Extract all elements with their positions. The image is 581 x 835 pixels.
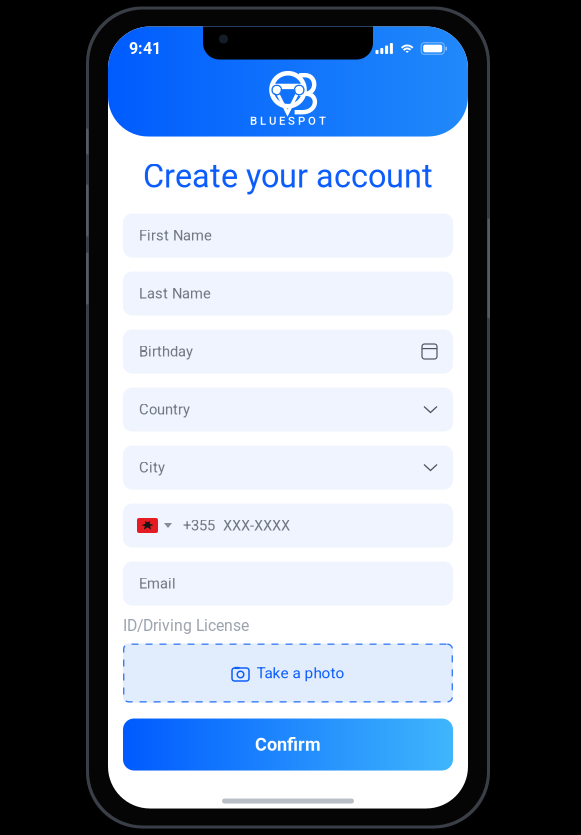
- staticText: ID/Driving License: [123, 616, 249, 635]
- button[interactable]: +355 XXX-XXXX: [123, 503, 453, 547]
- staticText: +355 XXX-XXXX: [183, 517, 290, 534]
- staticText: Email: [139, 575, 176, 592]
- staticText: Country: [139, 401, 190, 418]
- button[interactable]: Email: [123, 561, 453, 605]
- staticText: First Name: [139, 227, 212, 244]
- staticText: 9:41: [129, 39, 161, 58]
- staticText: B L U E S P O T: [250, 114, 326, 127]
- button[interactable]: City: [123, 445, 453, 489]
- staticText: Create your account: [143, 157, 433, 195]
- button[interactable]: Last Name: [123, 271, 453, 315]
- staticText: City: [139, 459, 165, 476]
- staticText: Last Name: [139, 285, 211, 302]
- button[interactable]: Country: [123, 387, 453, 431]
- button[interactable]: Take a photo: [123, 643, 453, 702]
- button[interactable]: First Name: [123, 213, 453, 257]
- button[interactable]: Confirm: [123, 718, 453, 770]
- staticText: Take a photo: [256, 664, 344, 682]
- button[interactable]: Birthday: [123, 329, 453, 373]
- staticText: Birthday: [139, 343, 193, 360]
- staticText: Confirm: [255, 734, 321, 755]
